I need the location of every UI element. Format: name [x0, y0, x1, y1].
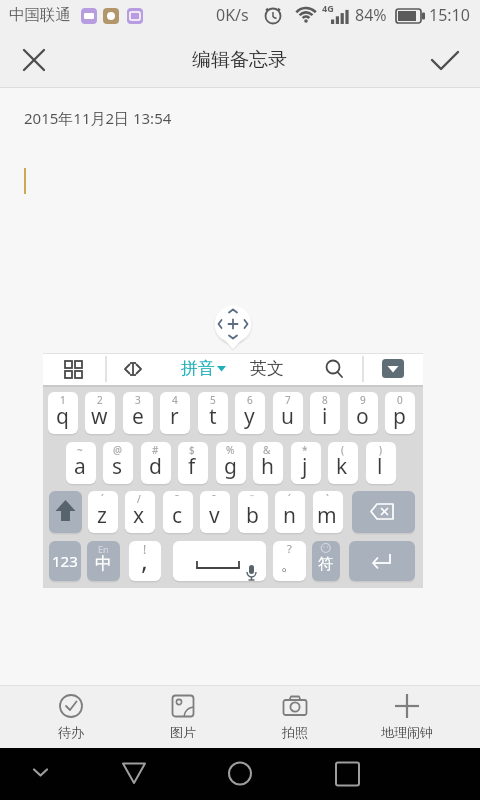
- staticText: ~: [77, 443, 83, 457]
- staticText: k: [336, 452, 348, 481]
- staticText: 待办: [58, 724, 84, 740]
- staticText: 6: [247, 393, 253, 407]
- staticText: x: [133, 501, 145, 530]
- button[interactable]: 5: [198, 392, 228, 434]
- staticText: r: [170, 402, 179, 431]
- button[interactable]: %: [216, 442, 246, 484]
- button[interactable]: 0: [385, 392, 415, 434]
- staticText: w: [91, 402, 108, 431]
- button[interactable]: 7: [273, 392, 303, 434]
- staticText: t: [209, 402, 217, 431]
- button[interactable]: 4: [160, 392, 190, 434]
- staticText: 符: [318, 555, 333, 574]
- button[interactable]: ˉ: [200, 491, 230, 533]
- staticText: 3: [135, 393, 141, 407]
- staticText: 编辑备忘录: [192, 48, 287, 72]
- button[interactable]: [352, 491, 415, 533]
- button[interactable]: 符: [312, 541, 340, 581]
- staticText: ,: [141, 542, 148, 577]
- button[interactable]: [16, 748, 66, 800]
- button[interactable]: &: [253, 442, 283, 484]
- button[interactable]: [173, 541, 266, 581]
- button[interactable]: 6: [235, 392, 265, 434]
- staticText: s: [112, 452, 123, 481]
- staticText: !: [143, 541, 147, 557]
- staticText: 拼音: [181, 358, 215, 379]
- staticText: %: [226, 443, 235, 457]
- button[interactable]: 123: [49, 541, 81, 581]
- staticText: o: [356, 402, 369, 431]
- staticText: z: [97, 501, 107, 530]
- staticText: 5: [210, 393, 216, 407]
- staticText: $: [189, 443, 195, 457]
- staticText: 拍照: [282, 724, 308, 740]
- staticText: d: [149, 452, 162, 481]
- staticText: ˉ: [175, 492, 179, 506]
- button[interactable]: !: [129, 541, 161, 581]
- button[interactable]: 拍照: [243, 687, 347, 747]
- staticText: l: [377, 452, 383, 481]
- button[interactable]: (: [328, 442, 358, 484]
- button[interactable]: ˋ: [313, 491, 343, 533]
- staticText: f: [188, 452, 196, 481]
- button[interactable]: ˉ: [163, 491, 193, 533]
- staticText: h: [261, 452, 274, 481]
- button[interactable]: 8: [310, 392, 340, 434]
- staticText: #: [152, 443, 159, 457]
- button[interactable]: $: [178, 442, 208, 484]
- button[interactable]: ): [366, 442, 396, 484]
- button[interactable]: 1: [48, 392, 78, 434]
- staticText: q: [56, 402, 69, 431]
- button[interactable]: [322, 748, 372, 800]
- button[interactable]: ?: [273, 541, 306, 581]
- button[interactable]: ˊ: [275, 491, 305, 533]
- staticText: 中: [95, 553, 112, 574]
- staticText: ˊ: [288, 492, 291, 506]
- staticText: 8: [322, 393, 328, 407]
- button[interactable]: 待办: [19, 687, 123, 747]
- button[interactable]: [109, 748, 159, 800]
- button[interactable]: En: [87, 541, 120, 581]
- staticText: 15:10: [429, 4, 470, 26]
- button[interactable]: ¨: [238, 491, 268, 533]
- staticText: b: [246, 501, 259, 530]
- staticText: En: [98, 543, 109, 555]
- button[interactable]: ~: [66, 442, 96, 484]
- staticText: g: [224, 452, 237, 481]
- button[interactable]: 9: [348, 392, 378, 434]
- staticText: ¨: [249, 492, 255, 506]
- button[interactable]: ˊ: [88, 491, 118, 533]
- staticText: u: [281, 402, 294, 431]
- staticText: *: [302, 443, 308, 457]
- button[interactable]: @: [103, 442, 133, 484]
- staticText: 7: [285, 393, 291, 407]
- button[interactable]: *: [291, 442, 321, 484]
- button[interactable]: [349, 541, 415, 581]
- button[interactable]: 地理闹钟: [355, 687, 459, 747]
- staticText: 123: [52, 551, 78, 571]
- staticText: ?: [287, 541, 292, 556]
- staticText: 。: [281, 555, 297, 575]
- button[interactable]: [425, 40, 465, 80]
- button[interactable]: [14, 40, 54, 80]
- staticText: n: [283, 501, 296, 530]
- staticText: &: [263, 443, 271, 457]
- staticText: v: [209, 501, 220, 530]
- button[interactable]: [215, 748, 265, 800]
- button[interactable]: #: [141, 442, 171, 484]
- staticText: ˊ: [101, 492, 104, 506]
- staticText: p: [393, 402, 406, 431]
- staticText: ˉ: [212, 492, 216, 506]
- staticText: 2015年11月2日 13:54: [24, 108, 172, 128]
- button[interactable]: 2: [85, 392, 115, 434]
- button[interactable]: [49, 491, 82, 533]
- staticText: 1: [60, 393, 66, 407]
- staticText: i: [322, 402, 328, 431]
- staticText: y: [244, 402, 255, 431]
- button[interactable]: 3: [123, 392, 153, 434]
- button[interactable]: 图片: [131, 687, 235, 747]
- staticText: 4G: [322, 2, 334, 14]
- button[interactable]: /: [125, 491, 155, 533]
- staticText: j: [302, 452, 308, 481]
- button[interactable]: 拼音: [43, 353, 423, 385]
